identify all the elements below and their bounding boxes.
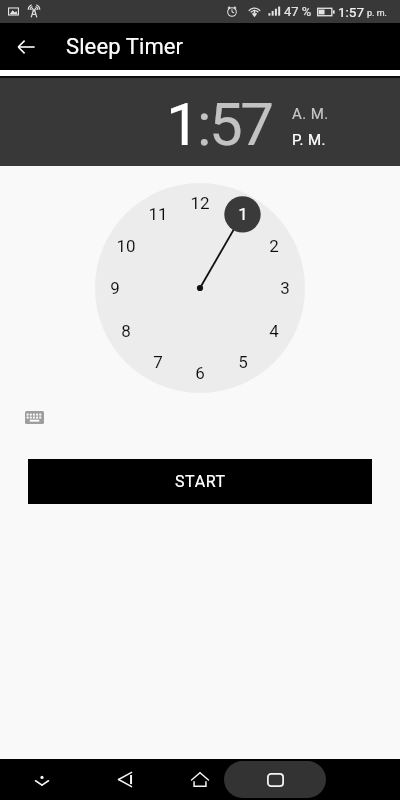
- staticText: 1:57: [338, 4, 365, 20]
- staticText: 1:57: [166, 89, 272, 159]
- staticText: 1: [238, 204, 248, 224]
- button[interactable]: Back: [111, 759, 138, 800]
- button[interactable]: P. M.: [292, 131, 326, 149]
- staticText: 4: [269, 321, 279, 341]
- staticText: 3: [280, 278, 290, 298]
- staticText: 12: [190, 193, 210, 213]
- staticText: Sleep Timer: [66, 34, 184, 60]
- button[interactable]: 12: [184, 187, 216, 219]
- button[interactable]: 4: [258, 315, 290, 347]
- button[interactable]: 6: [184, 357, 216, 389]
- button[interactable]: 7: [142, 346, 174, 378]
- button[interactable]: 9: [99, 272, 131, 304]
- staticText: 6: [195, 363, 205, 383]
- button[interactable]: 3: [269, 272, 301, 304]
- staticText: START: [175, 472, 226, 491]
- button[interactable]: 2: [258, 230, 290, 262]
- button[interactable]: Hide keyboard: [28, 759, 55, 800]
- button[interactable]: Home: [186, 759, 213, 800]
- staticText: 9: [110, 278, 120, 298]
- staticText: A. M.: [292, 105, 329, 123]
- button[interactable]: 11: [142, 198, 174, 230]
- button[interactable]: Back: [0, 23, 52, 70]
- staticText: 8: [121, 321, 131, 341]
- staticText: 47 %: [284, 4, 312, 19]
- staticText: 2: [269, 236, 279, 256]
- button[interactable]: A. M.: [292, 105, 329, 123]
- staticText: p. m.: [367, 8, 387, 19]
- button[interactable]: START: [28, 459, 372, 504]
- staticText: P. M.: [292, 131, 326, 149]
- button[interactable]: Switch to keyboard input: [25, 411, 44, 424]
- button[interactable]: Recent apps: [224, 761, 326, 798]
- button[interactable]: 5: [227, 346, 259, 378]
- button[interactable]: 8: [110, 315, 142, 347]
- staticText: 10: [116, 236, 136, 256]
- button[interactable]: 1:57: [166, 89, 272, 159]
- button[interactable]: 1: [227, 198, 259, 230]
- staticText: 7: [153, 352, 163, 372]
- staticText: 11: [148, 204, 168, 224]
- staticText: 5: [238, 352, 248, 372]
- button[interactable]: 10: [110, 230, 142, 262]
